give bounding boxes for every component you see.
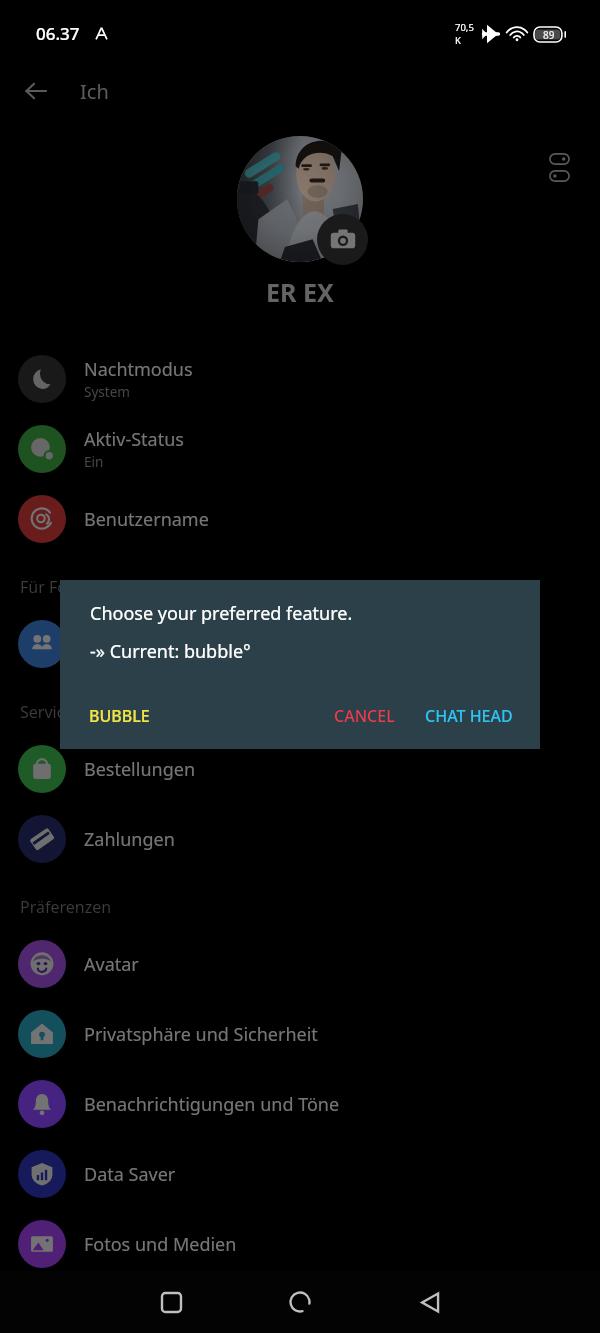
button[interactable]: CANCEL <box>322 695 407 737</box>
staticText: Bestellungen <box>84 757 196 782</box>
button[interactable]: Back <box>406 1278 454 1326</box>
staticText: Zahlungen <box>84 827 175 852</box>
button[interactable]: Fotos und Medien <box>0 1209 600 1279</box>
button[interactable]: CHAT HEAD <box>421 695 540 737</box>
staticText: 06.37 <box>36 22 80 45</box>
staticText: Benachrichtigungen und Töne <box>84 1092 340 1117</box>
button[interactable]: Benachrichtigungen und Töne <box>0 1069 600 1139</box>
button[interactable]: Avatar <box>0 929 600 999</box>
button[interactable]: Zahlungen <box>0 804 600 874</box>
button[interactable]: Change profile photo <box>317 214 368 265</box>
button[interactable]: BUBBLE <box>60 695 179 737</box>
staticText: CHAT HEAD <box>425 705 513 727</box>
staticText: Nachtmodus <box>84 357 193 382</box>
staticText: Ich <box>80 78 109 105</box>
staticText: ER EX <box>266 275 334 309</box>
staticText: Aktiv-Status <box>84 427 184 452</box>
button[interactable]: Enge Freunde <box>0 609 600 679</box>
staticText: Choose your preferred feature. <box>90 601 353 626</box>
button[interactable]: Back <box>12 67 60 115</box>
staticText: Fotos und Medien <box>84 1232 237 1257</box>
button[interactable]: Nachtmodus <box>0 344 600 414</box>
button[interactable]: Bestellungen <box>0 734 600 804</box>
staticText: System <box>84 383 130 401</box>
staticText: Data Saver <box>84 1162 176 1187</box>
staticText: 70,5 <box>455 21 474 34</box>
staticText: K <box>455 34 461 47</box>
staticText: Services <box>20 701 82 723</box>
staticText: Für Follower <box>20 576 113 598</box>
button[interactable]: Privatsphäre und Sicherheit <box>0 999 600 1069</box>
staticText: Enge Freunde <box>84 632 202 657</box>
staticText: Avatar <box>84 952 139 977</box>
staticText: Benutzername <box>84 507 209 532</box>
staticText: BUBBLE <box>89 705 150 727</box>
staticText: CANCEL <box>334 705 395 727</box>
button[interactable]: Data Saver <box>0 1139 600 1209</box>
button[interactable]: Recent apps <box>147 1278 195 1326</box>
button[interactable]: Benutzername <box>0 484 600 554</box>
button[interactable]: Home <box>276 1278 324 1326</box>
staticText: Präferenzen <box>20 896 112 918</box>
button[interactable]: Profile photo <box>237 136 363 262</box>
staticText: -» Current: bubble° <box>90 639 251 664</box>
staticText: Ein <box>84 453 104 471</box>
staticText: Privatsphäre und Sicherheit <box>84 1022 318 1047</box>
button[interactable]: Aktiv-Status <box>0 414 600 484</box>
staticText: 89 <box>543 28 555 42</box>
button[interactable]: Settings <box>535 143 583 191</box>
